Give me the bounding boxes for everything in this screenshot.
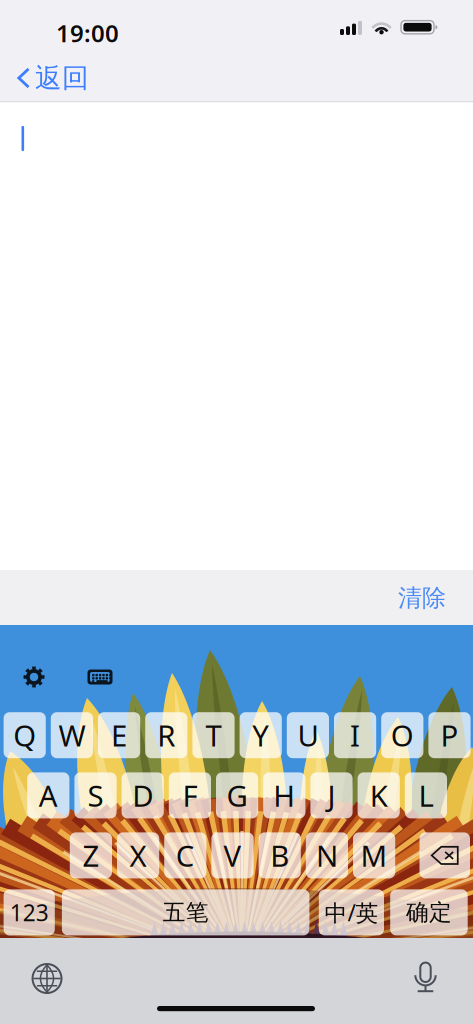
staticText: V — [223, 836, 241, 875]
button[interactable]: B — [259, 832, 301, 878]
staticText: P — [440, 716, 458, 755]
button[interactable]: Z — [70, 832, 112, 878]
button[interactable]: X — [117, 832, 159, 878]
button[interactable]: U — [287, 712, 329, 758]
button[interactable]: N — [306, 832, 348, 878]
button[interactable]: L — [405, 772, 447, 818]
staticText: 19:00 — [56, 17, 119, 49]
button[interactable]: Q — [4, 712, 46, 758]
button[interactable]: Switch keyboard — [19, 952, 75, 1004]
button[interactable]: E — [98, 712, 140, 758]
button[interactable]: P — [428, 712, 471, 758]
staticText: N — [316, 836, 338, 875]
staticText: G — [227, 776, 248, 815]
staticText: E — [111, 716, 127, 755]
staticText: S — [87, 776, 103, 815]
staticText: 确定 — [406, 898, 452, 926]
staticText: Z — [82, 836, 99, 875]
staticText: I — [350, 716, 360, 755]
staticText: L — [418, 776, 433, 815]
staticText: C — [176, 836, 195, 875]
button[interactable]: Keyboard layout — [80, 658, 120, 696]
staticText: 返回 — [35, 62, 89, 94]
button[interactable]: F — [169, 772, 211, 818]
staticText: 中/英 — [324, 897, 378, 927]
button[interactable]: M — [353, 832, 395, 878]
staticText: U — [297, 716, 318, 755]
staticText: O — [391, 716, 414, 755]
button[interactable]: J — [310, 772, 353, 818]
staticText: H — [273, 776, 295, 815]
staticText: R — [157, 716, 175, 755]
staticText: D — [132, 776, 153, 815]
button[interactable]: 清除 — [385, 578, 459, 618]
button[interactable]: G — [216, 772, 258, 818]
staticText: M — [361, 836, 388, 875]
button[interactable]: H — [263, 772, 305, 818]
button[interactable]: K — [358, 772, 400, 818]
button[interactable]: S — [74, 772, 117, 818]
button[interactable]: 中/英 — [319, 889, 384, 935]
staticText: K — [370, 776, 388, 815]
button[interactable]: Dictation — [397, 951, 453, 1003]
button[interactable]: 确定 — [390, 889, 468, 935]
staticText: 123 — [10, 897, 49, 927]
button[interactable]: 五笔 — [62, 889, 309, 935]
button[interactable]: 123 — [4, 889, 55, 935]
button[interactable]: D — [122, 772, 164, 818]
button[interactable]: T — [192, 712, 235, 758]
button[interactable] — [419, 832, 470, 878]
button[interactable]: I — [334, 712, 376, 758]
staticText: 清除 — [398, 583, 446, 613]
staticText: T — [205, 716, 221, 755]
button[interactable]: Y — [240, 712, 282, 758]
staticText: 五笔 — [163, 898, 209, 926]
staticText: X — [130, 836, 147, 875]
button[interactable]: W — [51, 712, 93, 758]
staticText: B — [270, 836, 289, 875]
staticText: Y — [252, 716, 269, 755]
staticText: J — [327, 776, 335, 815]
button[interactable]: R — [145, 712, 187, 758]
button[interactable]: O — [381, 712, 423, 758]
staticText: W — [58, 716, 85, 755]
button[interactable]: Keyboard settings — [14, 658, 54, 696]
button[interactable]: C — [164, 832, 206, 878]
staticText: A — [39, 776, 58, 815]
staticText: F — [182, 776, 197, 815]
button[interactable]: V — [211, 832, 254, 878]
button[interactable]: A — [27, 772, 69, 818]
staticText: Q — [13, 716, 36, 755]
button[interactable]: 返回 — [5, 57, 101, 99]
